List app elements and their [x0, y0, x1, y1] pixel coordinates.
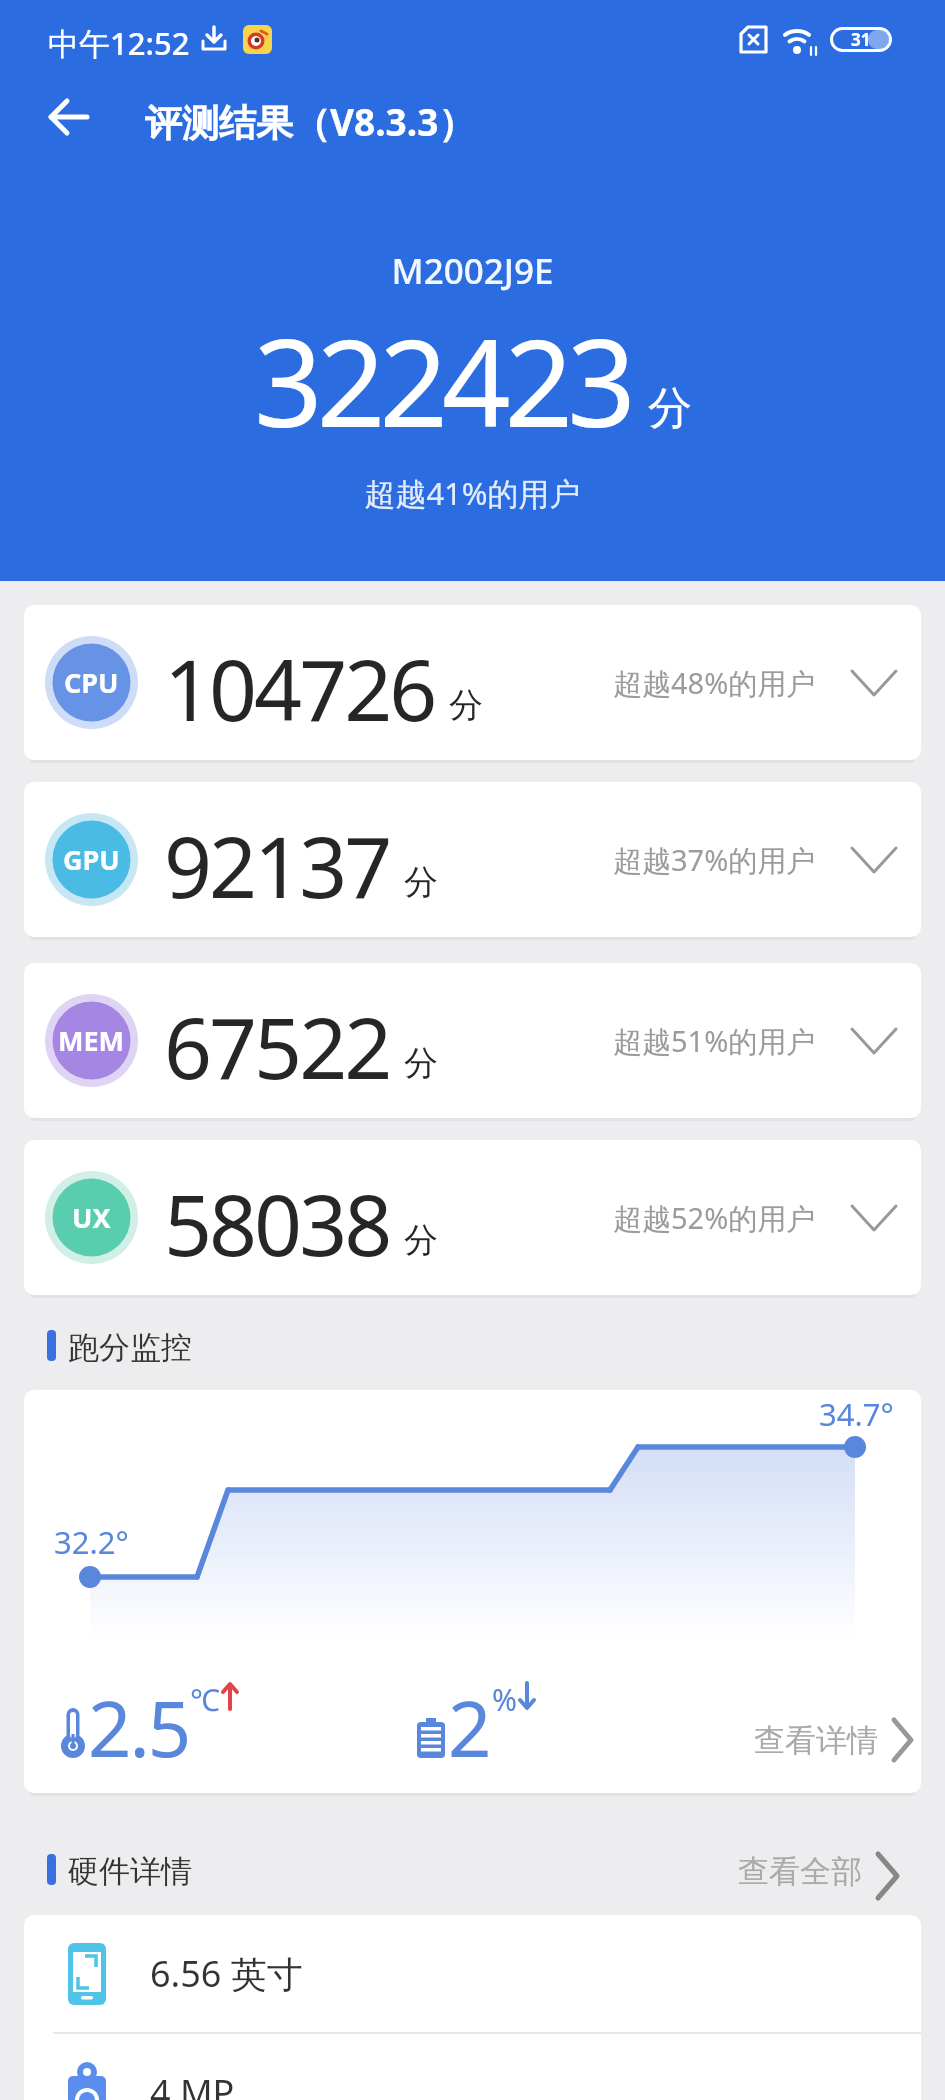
staticText: MEM: [58, 1022, 125, 1059]
staticText: UX: [72, 1199, 111, 1236]
staticText: 分: [404, 1219, 438, 1262]
staticText: %: [492, 1679, 517, 1720]
staticText: 超越52%的用户: [613, 1198, 816, 1238]
staticText: 查看全部: [738, 1852, 862, 1888]
staticText: M2002J9E: [0, 247, 945, 295]
staticText: 32.2°: [54, 1521, 129, 1563]
staticText: 分: [449, 684, 483, 727]
button[interactable]: CPU: [24, 605, 921, 760]
staticText: 92137: [164, 808, 390, 922]
staticText: GPU: [63, 841, 120, 878]
staticText: 分: [404, 861, 438, 904]
staticText: 322423: [254, 299, 630, 462]
button[interactable]: 查看全部: [738, 1852, 900, 1888]
staticText: 中午12:52: [48, 22, 190, 64]
staticText: 超越41%的用户: [0, 472, 945, 514]
button[interactable]: GPU: [24, 782, 921, 937]
staticText: 超越48%的用户: [613, 663, 816, 703]
staticText: CPU: [64, 664, 119, 701]
staticText: 67522: [164, 989, 390, 1103]
staticText: 评测结果（V8.3.3）: [145, 96, 476, 147]
button[interactable]: 6.56 英寸: [24, 1915, 921, 2032]
staticText: 2.5: [88, 1676, 190, 1780]
staticText: 超越51%的用户: [613, 1021, 816, 1061]
staticText: 6.56 英寸: [150, 1949, 303, 1998]
staticText: 58038: [164, 1166, 390, 1280]
button[interactable]: [38, 88, 100, 146]
staticText: 31: [851, 28, 871, 51]
staticText: 超越37%的用户: [613, 840, 816, 880]
staticText: 34.7°: [819, 1393, 894, 1435]
button[interactable]: 查看详情: [724, 1700, 914, 1780]
button[interactable]: MEM: [24, 963, 921, 1118]
staticText: 跑分监控: [68, 1328, 192, 1364]
staticText: 分: [404, 1042, 438, 1085]
staticText: 分: [648, 381, 692, 436]
button[interactable]: UX: [24, 1140, 921, 1295]
staticText: 4 MP: [150, 2068, 235, 2100]
staticText: ℃: [190, 1679, 220, 1720]
button[interactable]: 32.2°: [24, 1390, 921, 1793]
staticText: 2: [448, 1676, 492, 1780]
staticText: 硬件详情: [68, 1852, 192, 1888]
staticText: 查看详情: [754, 1721, 878, 1760]
staticText: 104726: [164, 631, 435, 745]
button[interactable]: 4 MP: [24, 2034, 921, 2100]
